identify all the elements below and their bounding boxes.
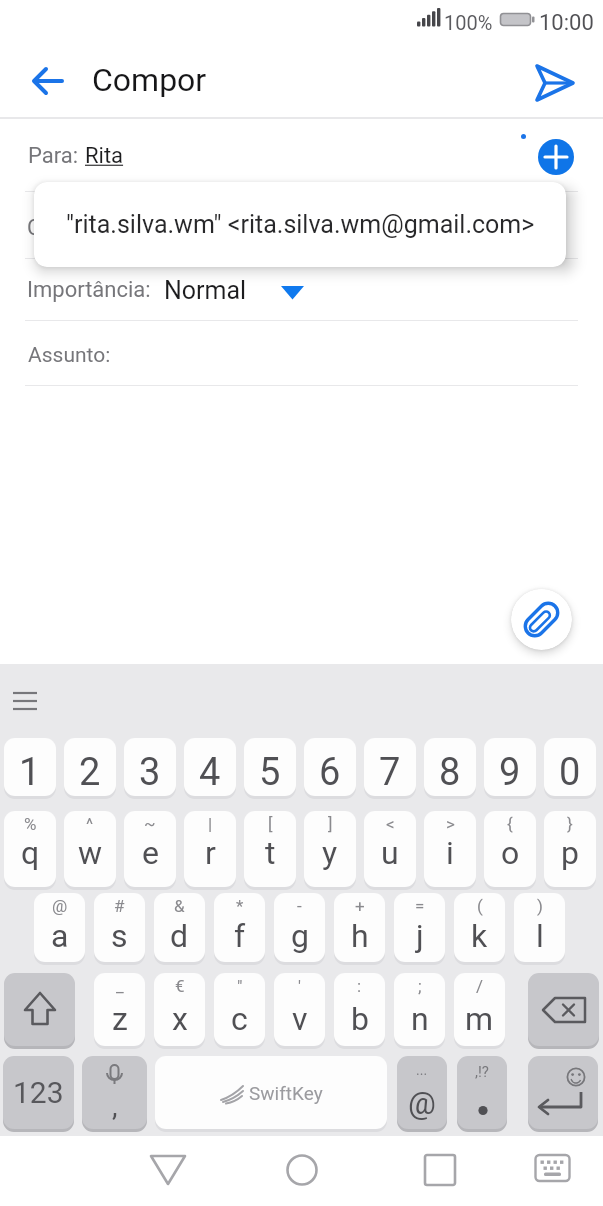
button[interactable]: SwiftKey — [155, 1056, 387, 1129]
button[interactable]: " — [214, 973, 265, 1046]
button[interactable]: ; — [394, 973, 445, 1046]
staticText: 8 — [439, 750, 461, 795]
button[interactable]: 4 — [184, 738, 236, 796]
staticText: 100% — [444, 11, 493, 34]
staticText: SwiftKey — [249, 1082, 323, 1104]
button[interactable] — [420, 1150, 460, 1190]
staticText: ' — [298, 976, 301, 996]
button[interactable]: / — [454, 973, 505, 1046]
button[interactable]: € — [154, 973, 205, 1046]
button[interactable] — [528, 1056, 598, 1129]
button[interactable]: ( — [454, 893, 505, 962]
button[interactable]: > — [424, 811, 476, 887]
button[interactable] — [528, 58, 580, 108]
staticText: Cc/Bcc: — [27, 215, 104, 241]
staticText: Importância: — [27, 277, 151, 303]
staticText: c — [231, 1000, 248, 1038]
button[interactable]: 123 — [3, 1056, 74, 1129]
staticText: # — [114, 896, 125, 916]
staticText: | — [208, 814, 213, 834]
button[interactable] — [22, 58, 68, 104]
button[interactable]: 0 — [544, 738, 596, 796]
button[interactable] — [148, 1150, 188, 1190]
button[interactable] — [534, 1152, 572, 1184]
button[interactable] — [4, 973, 75, 1046]
staticText: } — [567, 814, 573, 834]
staticText: t — [265, 834, 276, 872]
staticText: - — [297, 896, 302, 916]
staticText: j — [416, 917, 424, 955]
staticText: b — [351, 1000, 369, 1038]
staticText: "rita.silva.wm" <rita.silva.wm@gmail.com… — [66, 210, 535, 239]
staticText: x — [172, 1000, 188, 1038]
button[interactable]: } — [544, 811, 596, 887]
staticText: ] — [328, 814, 333, 834]
staticText: ~ — [144, 814, 156, 834]
button[interactable]: # — [94, 893, 145, 962]
staticText: w — [78, 834, 103, 872]
staticText: " — [237, 976, 243, 996]
button[interactable] — [528, 973, 599, 1046]
button[interactable]: ^ — [64, 811, 116, 887]
staticText: + — [355, 896, 365, 916]
button[interactable] — [511, 589, 572, 650]
button[interactable]: ) — [514, 893, 565, 962]
staticText: 2 — [79, 750, 101, 795]
button[interactable] — [10, 688, 42, 716]
button[interactable]: : — [334, 973, 385, 1046]
button[interactable]: ,!? — [457, 1056, 507, 1129]
staticText: d — [170, 917, 189, 955]
button[interactable]: { — [484, 811, 536, 887]
button[interactable]: ... — [397, 1056, 447, 1129]
staticText: 4 — [199, 750, 221, 795]
button[interactable]: - — [274, 893, 325, 962]
staticText: o — [501, 834, 520, 872]
staticText: , — [112, 1090, 118, 1123]
staticText: 10:00 — [539, 10, 594, 36]
staticText: 5 — [259, 750, 281, 795]
button[interactable]: ] — [304, 811, 356, 887]
staticText: ,!? — [475, 1063, 489, 1081]
button[interactable]: 9 — [484, 738, 536, 796]
button[interactable]: & — [154, 893, 205, 962]
button[interactable]: 3 — [124, 738, 176, 796]
staticText: Compor — [92, 61, 207, 99]
button[interactable]: * — [214, 893, 265, 962]
button[interactable]: % — [4, 811, 56, 887]
staticText: p — [561, 834, 579, 872]
button[interactable] — [538, 139, 574, 175]
button[interactable]: 8 — [424, 738, 476, 796]
button[interactable]: @ — [34, 893, 85, 962]
staticText: ... — [416, 1062, 428, 1078]
button[interactable]: 5 — [244, 738, 296, 796]
staticText: g — [291, 917, 309, 955]
staticText: e — [142, 834, 159, 872]
staticText: q — [21, 834, 40, 872]
button[interactable]: _ — [94, 973, 145, 1046]
button[interactable]: "rita.silva.wm" <rita.silva.wm@gmail.com… — [34, 182, 566, 267]
staticText: z — [112, 1000, 128, 1038]
staticText: ) — [537, 896, 543, 916]
button[interactable]: 1 — [4, 738, 56, 796]
staticText: / — [476, 976, 484, 996]
staticText: i — [446, 834, 454, 872]
button[interactable]: | — [184, 811, 236, 887]
staticText: ( — [477, 896, 483, 916]
staticText: 3 — [139, 750, 161, 795]
button[interactable]: 2 — [64, 738, 116, 796]
staticText: % — [24, 814, 37, 834]
staticText: 9 — [499, 750, 521, 795]
button[interactable] — [282, 1150, 322, 1190]
staticText: { — [507, 814, 513, 834]
button[interactable]: < — [364, 811, 416, 887]
staticText: v — [292, 1000, 308, 1038]
button[interactable]: , — [82, 1056, 147, 1129]
button[interactable]: = — [394, 893, 445, 962]
button[interactable]: ~ — [124, 811, 176, 887]
button[interactable]: 7 — [364, 738, 416, 796]
button[interactable]: [ — [244, 811, 296, 887]
staticText: < — [386, 814, 395, 834]
button[interactable]: 6 — [304, 738, 356, 796]
button[interactable]: ' — [274, 973, 325, 1046]
button[interactable]: + — [334, 893, 385, 962]
